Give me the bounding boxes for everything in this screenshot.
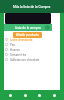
staticText: Añadir producto: [16, 33, 39, 37]
button[interactable]: Pan: [5, 42, 51, 47]
button[interactable]: Tab 2: [34, 90, 44, 100]
button[interactable]: Leche desnatada: [5, 37, 51, 42]
button[interactable]: Tab 1: [20, 90, 30, 100]
button[interactable]: Tab 3: [49, 90, 59, 100]
staticText: Leche desnatada: [10, 38, 33, 42]
staticText: Más la lista de la Compra: [13, 5, 51, 9]
button[interactable]: Galletas con chocolate: [5, 57, 51, 62]
staticText: Tomate frito: [10, 53, 27, 57]
button[interactable]: Huevos: [5, 47, 51, 52]
button[interactable]: Add: [45, 25, 50, 30]
button[interactable]: Tomate frito: [5, 52, 51, 57]
button[interactable]: [5, 13, 51, 24]
staticText: Lista de la compra: [15, 26, 41, 30]
staticText: Galletas con chocolate: [10, 58, 40, 62]
button[interactable]: Añadir producto: [13, 32, 42, 38]
staticText: Pan: [10, 43, 15, 47]
button[interactable]: Tab 0: [5, 90, 15, 100]
staticText: Huevos: [10, 48, 20, 52]
